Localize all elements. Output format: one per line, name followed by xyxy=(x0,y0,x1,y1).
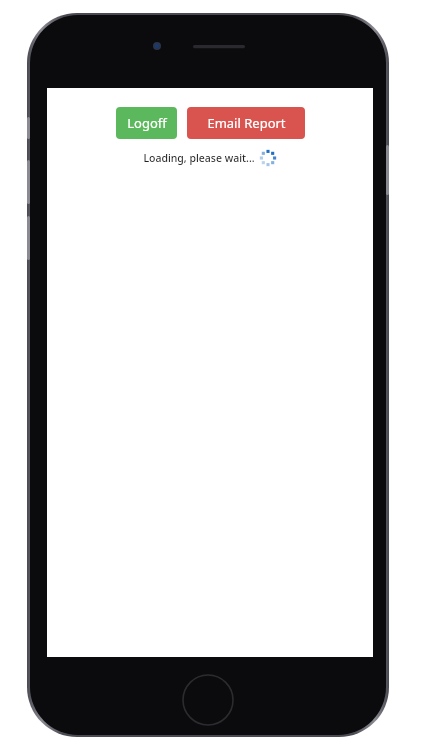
button[interactable]: Email Report xyxy=(187,107,305,139)
staticText: Logoff xyxy=(127,114,167,132)
staticText: Email Report xyxy=(207,114,286,132)
other: Loading xyxy=(258,148,278,168)
button[interactable]: Logoff xyxy=(116,107,177,139)
staticText: Loading, please wait... xyxy=(143,151,255,165)
